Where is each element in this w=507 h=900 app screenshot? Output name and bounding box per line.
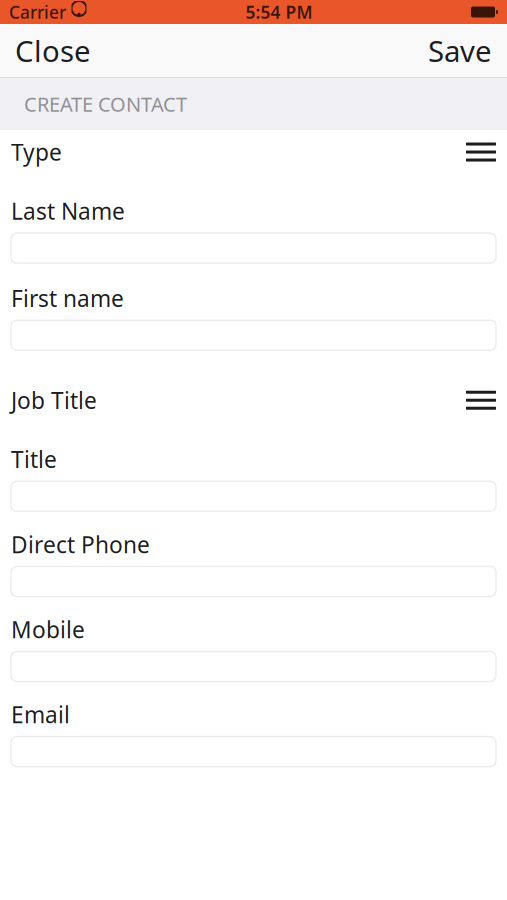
staticText: Title	[11, 444, 57, 474]
staticText: Direct Phone	[11, 529, 150, 559]
button[interactable]: Job Title	[0, 378, 507, 422]
button[interactable]: Save	[414, 19, 506, 82]
button[interactable]: Close	[1, 19, 105, 82]
staticText: 5:54 PM	[245, 0, 312, 23]
staticText: First name	[11, 283, 124, 313]
button[interactable]	[11, 566, 496, 596]
button[interactable]	[11, 320, 496, 350]
button[interactable]	[11, 651, 496, 681]
staticText: Email	[11, 699, 70, 730]
staticText: Job Title	[11, 385, 97, 415]
button[interactable]	[11, 233, 496, 263]
staticText: CREATE CONTACT	[24, 91, 187, 117]
staticText: Type	[11, 137, 62, 167]
staticText: Save	[428, 31, 492, 70]
button[interactable]	[11, 481, 496, 511]
staticText: Mobile	[11, 614, 85, 644]
button[interactable]: Type	[0, 130, 507, 174]
staticText: Last Name	[11, 196, 125, 226]
button[interactable]	[11, 737, 496, 767]
staticText: Close	[15, 31, 91, 70]
staticText: Carrier	[9, 0, 66, 23]
